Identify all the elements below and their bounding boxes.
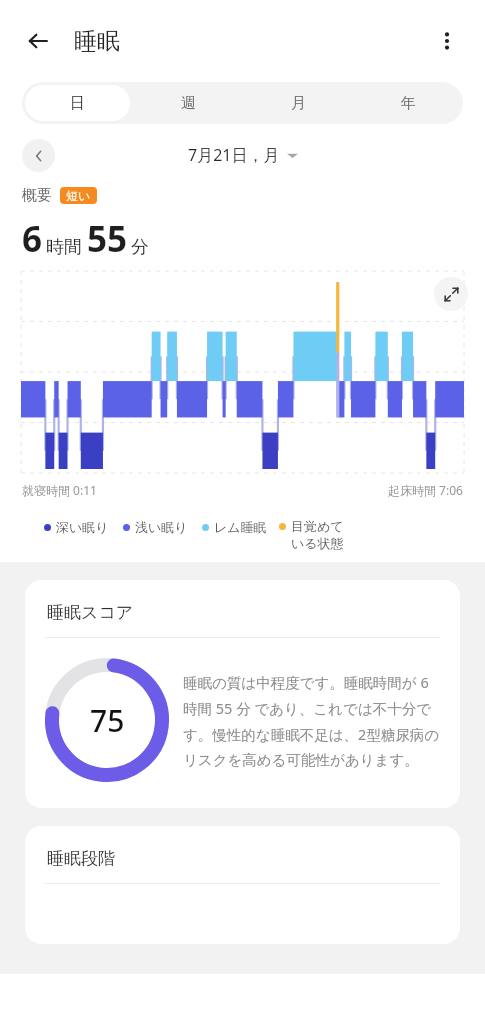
- button[interactable]: More options: [423, 17, 471, 65]
- staticText: 就寝時間 0:11: [22, 482, 97, 498]
- staticText: 深い眠り: [56, 519, 109, 535]
- staticText: 55: [87, 215, 128, 263]
- button[interactable]: Back: [14, 17, 62, 65]
- staticText: 月: [291, 94, 306, 113]
- staticText: 分: [131, 236, 149, 259]
- staticText: 睡眠スコア: [47, 602, 134, 623]
- staticText: 7月21日，月: [188, 144, 280, 166]
- button[interactable]: 睡眠段階: [25, 826, 460, 944]
- staticText: 時間: [46, 236, 82, 259]
- staticText: 目覚めている状態: [291, 518, 347, 552]
- staticText: 起床時間 7:06: [388, 482, 463, 498]
- button[interactable]: 年: [356, 85, 460, 121]
- button[interactable]: Previous day: [22, 139, 55, 172]
- button[interactable]: 7月21日，月: [188, 144, 298, 166]
- staticText: 睡眠: [74, 27, 120, 56]
- staticText: 睡眠段階: [47, 848, 115, 869]
- button[interactable]: 週: [136, 85, 240, 121]
- staticText: 浅い眠り: [135, 519, 188, 535]
- button[interactable]: 月: [246, 85, 350, 121]
- staticText: レム睡眠: [214, 519, 267, 535]
- staticText: 週: [181, 94, 196, 113]
- button[interactable]: 睡眠スコア: [25, 580, 460, 808]
- button[interactable]: 日: [25, 85, 130, 121]
- staticText: 年: [401, 94, 416, 113]
- staticText: 6: [22, 215, 43, 263]
- button[interactable]: Expand chart: [434, 277, 468, 311]
- staticText: 睡眠の質は中程度です。睡眠時間が 6 時間 55 分 であり、これでは不十分です…: [183, 672, 444, 769]
- staticText: 短い: [66, 188, 91, 203]
- staticText: 75: [90, 700, 125, 741]
- staticText: 日: [70, 94, 85, 113]
- staticText: 概要: [22, 186, 52, 205]
